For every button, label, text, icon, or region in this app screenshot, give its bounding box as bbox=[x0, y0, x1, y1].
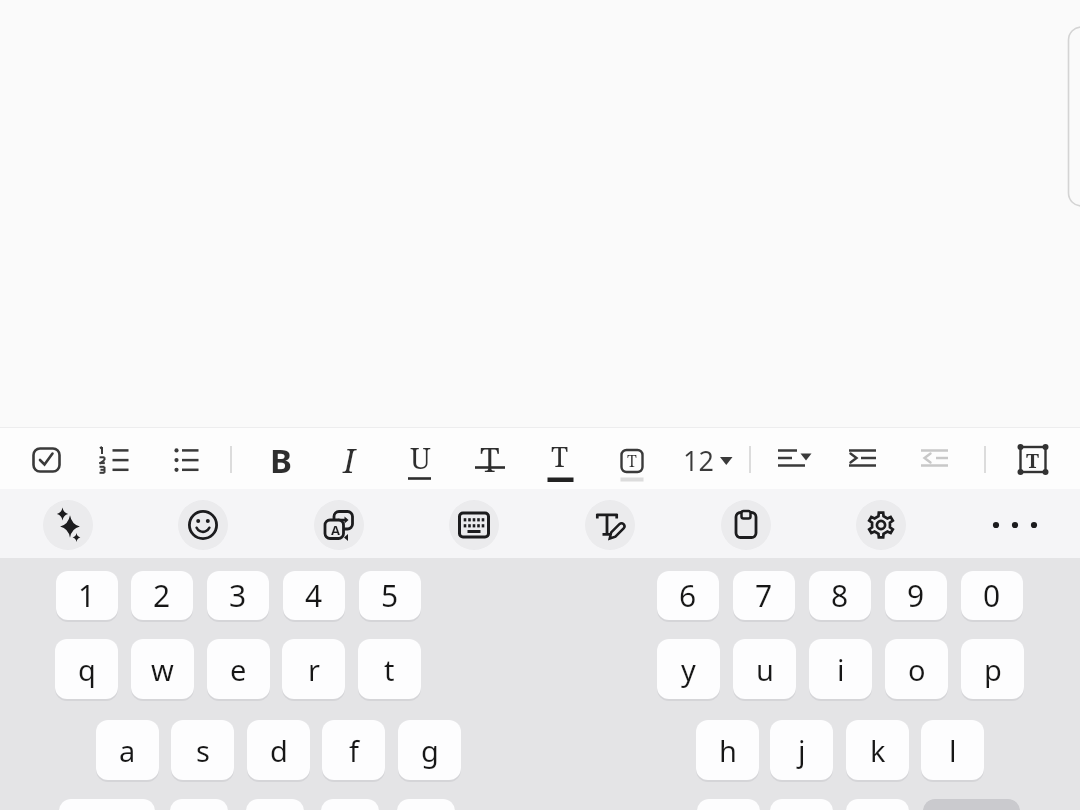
button[interactable]: y bbox=[657, 639, 720, 699]
button[interactable]: 5 bbox=[359, 571, 421, 620]
staticText: T bbox=[1026, 447, 1040, 474]
button[interactable] bbox=[397, 799, 455, 810]
staticText: a bbox=[119, 731, 136, 770]
button[interactable]: e bbox=[207, 639, 270, 699]
button[interactable]: q bbox=[55, 639, 118, 699]
staticText: B bbox=[270, 438, 292, 483]
staticText: j bbox=[798, 731, 806, 770]
button[interactable]: w bbox=[131, 639, 194, 699]
staticText: 9 bbox=[907, 575, 925, 616]
button[interactable] bbox=[923, 799, 1020, 810]
button[interactable] bbox=[771, 436, 819, 484]
staticText: g bbox=[421, 731, 439, 770]
button[interactable]: I bbox=[325, 436, 373, 484]
staticText: k bbox=[870, 731, 886, 770]
button[interactable] bbox=[321, 799, 379, 810]
button[interactable]: f bbox=[322, 720, 385, 780]
button[interactable]: p bbox=[961, 639, 1024, 699]
button[interactable] bbox=[770, 799, 833, 810]
staticText: 4 bbox=[305, 575, 323, 616]
button[interactable] bbox=[911, 436, 959, 484]
staticText: q bbox=[78, 650, 96, 689]
button[interactable]: j bbox=[770, 720, 833, 780]
button[interactable] bbox=[990, 500, 1040, 550]
staticText: 0 bbox=[983, 575, 1001, 616]
staticText: 1 bbox=[78, 575, 96, 616]
staticText: t bbox=[384, 650, 395, 689]
button[interactable] bbox=[838, 436, 886, 484]
staticText: p bbox=[984, 650, 1002, 689]
button[interactable] bbox=[585, 500, 635, 550]
button[interactable]: l bbox=[921, 720, 984, 780]
button[interactable]: 7 bbox=[733, 571, 795, 620]
button[interactable]: s bbox=[171, 720, 234, 780]
staticText: 3 bbox=[229, 575, 247, 616]
staticText: e bbox=[230, 650, 247, 689]
staticText: T bbox=[480, 438, 500, 482]
staticText: T bbox=[627, 450, 637, 472]
button[interactable]: d bbox=[247, 720, 310, 780]
staticText: 12 bbox=[683, 442, 714, 479]
button[interactable] bbox=[697, 799, 760, 810]
button[interactable]: 12 bbox=[680, 436, 736, 484]
button[interactable] bbox=[178, 500, 228, 550]
button[interactable] bbox=[856, 500, 906, 550]
staticText: u bbox=[756, 650, 774, 689]
staticText: 2 bbox=[153, 575, 171, 616]
button[interactable] bbox=[22, 436, 70, 484]
button[interactable]: t bbox=[358, 639, 421, 699]
button[interactable] bbox=[246, 799, 304, 810]
button[interactable]: 4 bbox=[283, 571, 345, 620]
button[interactable]: 1 bbox=[56, 571, 118, 620]
staticText: h bbox=[719, 731, 737, 770]
button[interactable] bbox=[846, 799, 909, 810]
button[interactable]: 3 bbox=[207, 571, 269, 620]
button[interactable]: h bbox=[696, 720, 759, 780]
staticText: l bbox=[949, 731, 957, 770]
staticText: s bbox=[196, 731, 210, 770]
button[interactable]: U bbox=[396, 436, 444, 484]
button[interactable] bbox=[170, 799, 228, 810]
staticText: d bbox=[270, 731, 288, 770]
staticText: f bbox=[349, 731, 359, 770]
button[interactable]: T bbox=[1009, 436, 1057, 484]
staticText: o bbox=[908, 650, 926, 689]
button[interactable] bbox=[449, 500, 499, 550]
staticText: A bbox=[331, 521, 340, 539]
button[interactable]: 8 bbox=[809, 571, 871, 620]
button[interactable]: k bbox=[846, 720, 909, 780]
button[interactable]: 2 bbox=[131, 571, 193, 620]
button[interactable]: i bbox=[809, 639, 872, 699]
button[interactable] bbox=[59, 799, 155, 810]
staticText: U bbox=[410, 438, 431, 477]
staticText: y bbox=[681, 650, 696, 689]
button[interactable]: o bbox=[885, 639, 948, 699]
button[interactable]: r bbox=[282, 639, 345, 699]
staticText: T bbox=[551, 437, 569, 475]
button[interactable]: T bbox=[536, 436, 584, 484]
button[interactable]: B bbox=[257, 436, 305, 484]
staticText: 6 bbox=[679, 575, 697, 616]
button[interactable] bbox=[162, 436, 210, 484]
button[interactable] bbox=[721, 500, 771, 550]
staticText: 8 bbox=[831, 575, 849, 616]
staticText: I bbox=[343, 438, 356, 483]
button[interactable] bbox=[92, 436, 140, 484]
staticText: w bbox=[151, 650, 174, 689]
button[interactable]: 0 bbox=[961, 571, 1023, 620]
button[interactable]: g bbox=[398, 720, 461, 780]
button[interactable] bbox=[43, 500, 93, 550]
button[interactable]: a bbox=[96, 720, 159, 780]
staticText: i bbox=[837, 650, 845, 689]
button[interactable]: A bbox=[314, 500, 364, 550]
staticText: r bbox=[308, 650, 320, 689]
button[interactable]: T bbox=[466, 436, 514, 484]
staticText: 5 bbox=[381, 575, 399, 616]
button[interactable]: 9 bbox=[885, 571, 947, 620]
button[interactable]: T bbox=[608, 436, 656, 484]
button[interactable]: 6 bbox=[657, 571, 719, 620]
staticText: 7 bbox=[755, 575, 773, 616]
button[interactable]: u bbox=[733, 639, 796, 699]
